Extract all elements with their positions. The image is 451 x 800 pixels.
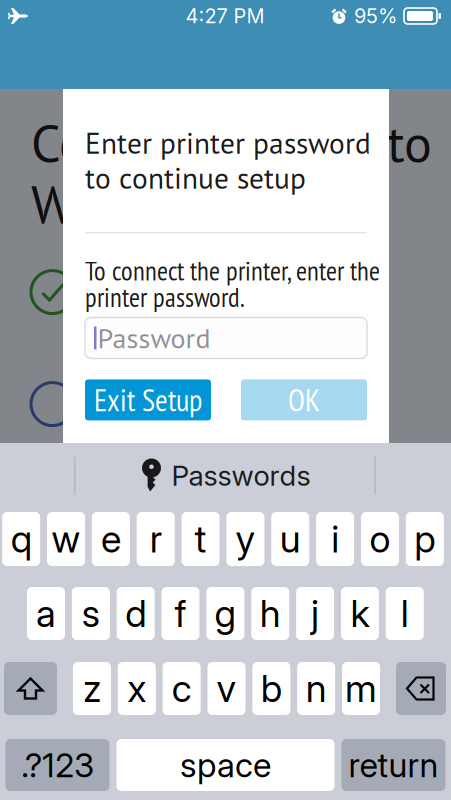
staticText: r <box>150 516 162 562</box>
button[interactable]: q <box>2 512 40 566</box>
staticText: Enter printer password <box>85 124 371 162</box>
button[interactable]: b <box>252 662 290 715</box>
button[interactable]: p <box>406 512 444 566</box>
staticText: k <box>350 591 369 636</box>
staticText: d <box>125 591 146 636</box>
staticText: l <box>401 591 409 636</box>
button[interactable]: t <box>182 512 220 566</box>
button[interactable]: Shift <box>4 662 57 715</box>
button[interactable]: h <box>251 587 289 640</box>
staticText: c <box>172 666 192 711</box>
button[interactable]: e <box>92 512 130 566</box>
staticText: To connect the printer, enter the <box>85 253 380 288</box>
staticText: w <box>51 516 80 562</box>
staticText: t <box>195 516 207 562</box>
staticText: o <box>369 516 390 562</box>
button[interactable]: w <box>47 512 85 566</box>
button[interactable]: v <box>207 662 245 715</box>
button[interactable]: d <box>117 587 155 640</box>
button[interactable]: k <box>341 587 379 640</box>
button[interactable]: x <box>118 662 156 715</box>
staticText: i <box>331 516 339 562</box>
staticText: a <box>36 591 56 636</box>
staticText: z <box>83 666 101 711</box>
staticText: v <box>216 666 236 711</box>
button[interactable]: OK <box>241 379 367 420</box>
staticText: q <box>11 516 32 562</box>
staticText: 95% <box>354 4 397 28</box>
staticText: e <box>101 516 121 562</box>
staticText: Password <box>97 320 210 356</box>
button[interactable]: l <box>386 587 424 640</box>
button[interactable]: n <box>297 662 335 715</box>
staticText: to continue setup <box>85 159 306 197</box>
staticText: printer password. <box>85 280 245 314</box>
staticText: 4:27 PM <box>185 4 264 28</box>
staticText: h <box>260 591 281 636</box>
staticText: Exit Setup <box>94 380 202 420</box>
staticText: y <box>235 516 255 562</box>
button[interactable]: Delete <box>396 662 446 715</box>
staticText: p <box>414 516 435 562</box>
staticText: n <box>306 666 327 711</box>
button[interactable]: Passwords <box>140 458 310 492</box>
button[interactable]: f <box>162 587 200 640</box>
button[interactable]: a <box>27 587 65 640</box>
staticText: space <box>180 745 271 785</box>
staticText: .?123 <box>21 745 94 785</box>
button[interactable]: z <box>73 662 111 715</box>
button[interactable]: s <box>72 587 110 640</box>
button[interactable]: .?123 <box>5 739 109 791</box>
staticText: Passwords <box>171 459 310 492</box>
staticText: m <box>345 666 377 711</box>
staticText: Wi-Fi <box>31 170 148 238</box>
button[interactable]: j <box>296 587 334 640</box>
staticText: f <box>175 591 187 636</box>
button[interactable]: return <box>341 739 445 791</box>
staticText: return <box>348 745 438 785</box>
button[interactable]: y <box>226 512 264 566</box>
button[interactable]: u <box>271 512 309 566</box>
staticText: OK <box>288 380 320 420</box>
staticText: j <box>311 591 319 636</box>
staticText: Connect printer to <box>31 109 432 176</box>
button[interactable]: o <box>361 512 399 566</box>
button[interactable]: r <box>137 512 175 566</box>
staticText: g <box>214 591 236 636</box>
button[interactable]: m <box>342 662 380 715</box>
staticText: u <box>280 516 301 562</box>
staticText: s <box>82 591 100 636</box>
staticText: x <box>127 666 146 711</box>
button[interactable]: space <box>116 739 334 791</box>
staticText: Printer found <box>92 271 272 313</box>
staticText: Connecting to <box>92 383 283 425</box>
button[interactable]: c <box>163 662 201 715</box>
staticText: b <box>261 666 282 711</box>
button[interactable]: Exit Setup <box>85 379 211 420</box>
button[interactable]: g <box>206 587 244 640</box>
button[interactable]: i <box>316 512 354 566</box>
